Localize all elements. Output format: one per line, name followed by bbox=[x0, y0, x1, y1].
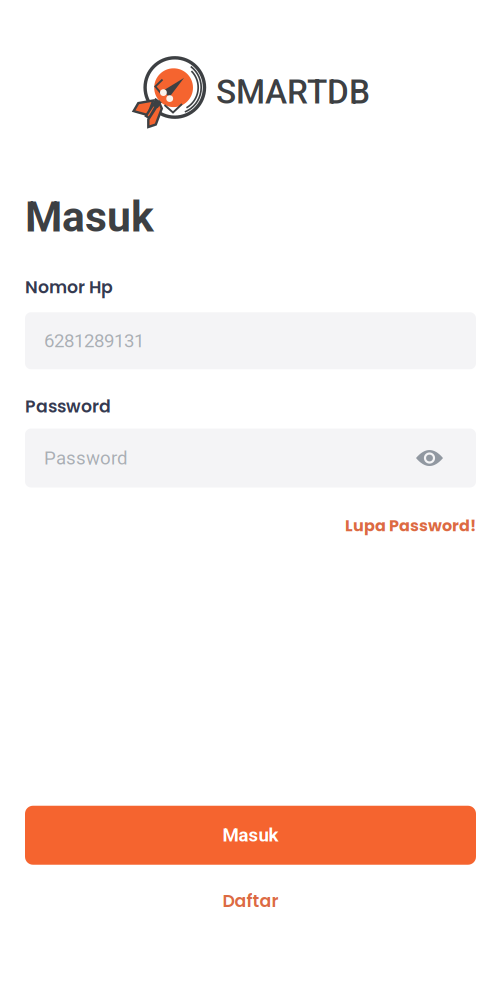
button[interactable]: Masuk bbox=[25, 806, 476, 865]
staticText: Masuk bbox=[25, 192, 154, 242]
button[interactable]: Show password bbox=[408, 437, 457, 479]
staticText: Password bbox=[44, 447, 128, 469]
staticText: Masuk bbox=[222, 824, 278, 846]
button[interactable]: Lupa Password! bbox=[345, 514, 476, 537]
staticText: SMARTDB bbox=[216, 72, 370, 112]
staticText: 6281289131 bbox=[44, 330, 144, 352]
staticText: Lupa Password! bbox=[345, 514, 476, 537]
staticText: Password bbox=[25, 394, 111, 419]
staticText: Daftar bbox=[222, 889, 278, 913]
staticText: Nomor Hp bbox=[25, 275, 113, 299]
button[interactable]: Daftar bbox=[0, 889, 501, 913]
